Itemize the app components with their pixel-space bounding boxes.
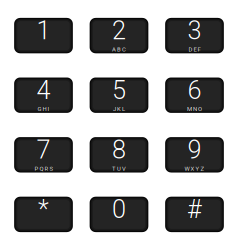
staticText: 1 [36,16,50,45]
staticText [43,46,44,53]
button[interactable]: 0 [90,197,148,232]
staticText [118,225,119,232]
staticText: G H I [37,106,49,112]
staticText: 7 [36,135,50,165]
staticText: T U V [112,165,126,172]
staticText: M N O [187,106,202,112]
staticText: P Q R S [34,165,52,172]
staticText: * [38,195,49,224]
staticText: 3 [187,16,201,45]
button[interactable]: 6 [165,77,224,113]
staticText: W X Y Z [184,165,204,172]
button[interactable]: 3 [165,18,224,53]
staticText: # [187,195,202,224]
staticText: 4 [36,75,50,105]
staticText [194,225,195,232]
staticText: 6 [187,75,201,105]
button[interactable]: 5 [90,77,148,113]
button[interactable]: 2 [90,18,148,53]
staticText: D E F [188,46,200,53]
staticText: 2 [112,16,126,45]
staticText: 5 [112,75,126,105]
button[interactable]: * [14,197,73,232]
button[interactable]: 1 [14,18,73,53]
staticText: 9 [187,135,201,165]
staticText: A B C [112,46,126,53]
staticText: 8 [112,135,126,165]
button[interactable]: # [165,197,224,232]
button[interactable]: 7 [14,137,73,172]
button[interactable]: 9 [165,137,224,172]
button[interactable]: 4 [14,77,73,113]
button[interactable]: 8 [90,137,148,172]
staticText [43,225,44,232]
staticText: J K L [113,106,125,112]
staticText: 0 [112,195,126,224]
